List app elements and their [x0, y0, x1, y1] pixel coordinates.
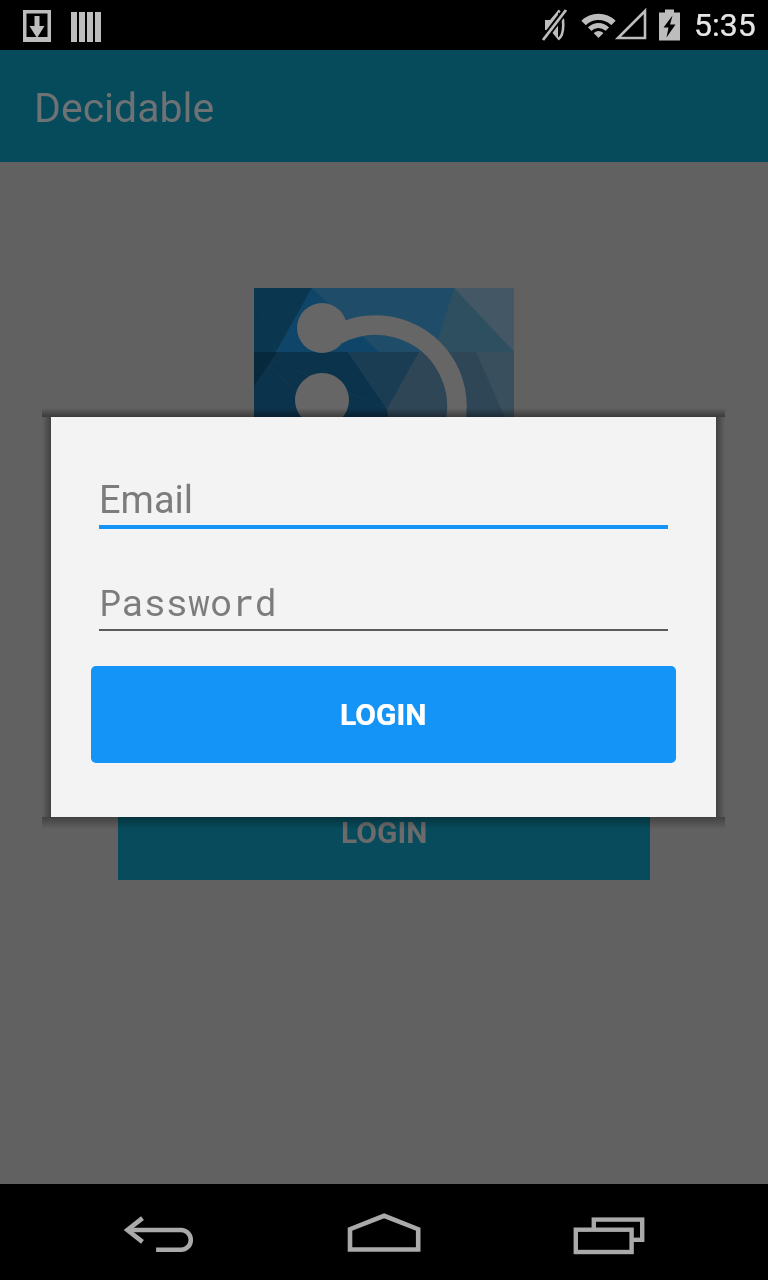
button[interactable]: LOGIN [118, 784, 650, 880]
staticText: Email [99, 478, 194, 523]
staticText: LOGIN [341, 815, 428, 850]
staticText: Password [99, 577, 277, 626]
button[interactable]: Password [99, 572, 668, 630]
staticText: 5:35 [694, 6, 756, 44]
button[interactable]: Home [334, 1206, 434, 1258]
button[interactable]: LOGIN [91, 666, 676, 763]
button[interactable]: Email [99, 471, 668, 529]
staticText: LOGIN [340, 697, 427, 732]
staticText: Decidable [34, 84, 215, 132]
button[interactable]: Back [108, 1206, 212, 1258]
button[interactable]: Recent apps [560, 1206, 664, 1258]
